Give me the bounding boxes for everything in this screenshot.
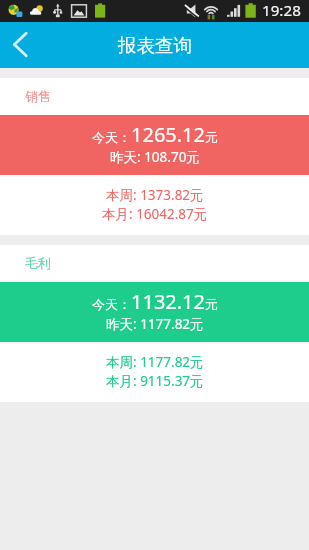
staticText: 昨天: 1177.82元 [106,315,204,333]
staticText: 昨天: 108.70元 [110,148,200,166]
staticText: 本周: 1177.82元 [106,353,204,371]
staticText: 19:28 [262,0,301,21]
button[interactable]: 本周: 1177.82元 [0,342,309,402]
button[interactable]: Back [0,22,44,68]
staticText: 今天：1265.12元 [92,121,218,148]
button[interactable]: 毛利 [0,245,309,282]
button[interactable]: 今天：1132.12元 [0,282,309,342]
staticText: 毛利 [25,255,51,271]
staticText: 本月: 9115.37元 [106,372,204,390]
button[interactable]: 销售 [0,78,309,115]
staticText: 今天：1132.12元 [92,288,218,315]
staticText: 本周: 1373.82元 [106,186,204,204]
staticText: 报表查询 [118,34,192,57]
button[interactable]: 本周: 1373.82元 [0,175,309,235]
staticText: 销售 [25,88,51,104]
staticText: 本月: 16042.87元 [102,205,208,223]
button[interactable]: 今天：1265.12元 [0,115,309,175]
